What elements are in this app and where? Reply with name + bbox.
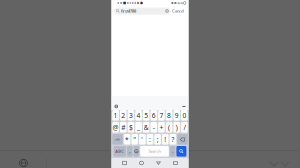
- staticText: ": [133, 135, 136, 144]
- button[interactable]: ': [139, 134, 146, 145]
- staticText: :: [149, 135, 151, 144]
- button[interactable]: ): [173, 122, 180, 133]
- button[interactable]: Cancel: [172, 8, 184, 14]
- button[interactable]: Home: [138, 159, 145, 167]
- staticText: Cancel: [172, 8, 184, 14]
- button[interactable]: *: [124, 134, 130, 145]
- button[interactable]: ?: [170, 134, 176, 145]
- staticText: 7: [159, 111, 163, 120]
- button[interactable]: :: [147, 134, 153, 145]
- staticText: (: [168, 123, 170, 132]
- button[interactable]: -: [150, 122, 157, 133]
- staticText: /: [183, 123, 185, 132]
- staticText: 5: [144, 111, 148, 120]
- button[interactable]: @: [112, 122, 119, 133]
- staticText: first4788: [121, 8, 136, 14]
- button[interactable]: Keyboard: [171, 159, 179, 167]
- staticText: ): [176, 123, 178, 132]
- button[interactable]: 7: [158, 110, 165, 121]
- button[interactable]: =\<: [112, 134, 123, 145]
- button[interactable]: ABC: [114, 146, 126, 157]
- staticText: =\<: [115, 137, 120, 142]
- button[interactable]: Back: [155, 159, 162, 167]
- button[interactable]: 0: [181, 110, 188, 121]
- button[interactable]: 2: [120, 110, 126, 121]
- button[interactable]: Account: [19, 158, 28, 167]
- button[interactable]: Collapse suggestions: [182, 106, 185, 107]
- button[interactable]: !: [162, 134, 169, 145]
- staticText: ,: [129, 148, 130, 155]
- staticText: 3: [129, 111, 133, 120]
- staticText: ?: [171, 135, 174, 144]
- staticText: &: [144, 123, 149, 132]
- button[interactable]: ": [131, 134, 138, 145]
- staticText: #: [121, 123, 125, 132]
- button[interactable]: Search: [176, 146, 186, 157]
- staticText: 8: [167, 111, 171, 120]
- staticText: *: [125, 135, 129, 144]
- staticText: 0: [182, 111, 186, 120]
- staticText: $: [129, 123, 133, 132]
- button[interactable]: .: [170, 146, 175, 157]
- staticText: 2: [121, 111, 125, 120]
- button[interactable]: 9: [173, 110, 180, 121]
- staticText: !: [164, 135, 166, 144]
- button[interactable]: 4: [135, 110, 142, 121]
- button[interactable]: $: [128, 122, 134, 133]
- staticText: ': [141, 135, 143, 144]
- staticText: .: [172, 148, 173, 155]
- staticText: +: [159, 123, 163, 132]
- button[interactable]: &: [143, 122, 149, 133]
- button[interactable]: Recents: [121, 159, 128, 167]
- button[interactable]: _: [135, 122, 142, 133]
- button[interactable]: /: [181, 122, 188, 133]
- button[interactable]: +: [158, 122, 165, 133]
- button[interactable]: 5: [143, 110, 149, 121]
- staticText: 4: [136, 111, 140, 120]
- staticText: ABC: [115, 149, 124, 154]
- staticText: -: [153, 123, 155, 132]
- staticText: 1: [114, 111, 118, 120]
- button[interactable]: 3: [128, 110, 134, 121]
- staticText: _: [137, 123, 140, 132]
- button[interactable]: ,: [127, 146, 133, 157]
- staticText: 6: [152, 111, 156, 120]
- button[interactable]: Backspace: [177, 134, 188, 145]
- button[interactable]: Emoji: [134, 146, 139, 157]
- button[interactable]: Gboard: [114, 105, 118, 108]
- staticText: @: [113, 123, 119, 132]
- button[interactable]: 8: [166, 110, 172, 121]
- button[interactable]: #: [120, 122, 126, 133]
- button[interactable]: 6: [150, 110, 157, 121]
- staticText: 9: [175, 111, 179, 120]
- button[interactable]: (: [166, 122, 172, 133]
- button[interactable]: ;: [154, 134, 161, 145]
- button[interactable]: 1: [112, 110, 119, 121]
- staticText: Search: [148, 149, 160, 154]
- button[interactable]: Search: [140, 146, 169, 157]
- button[interactable]: Expand: [270, 161, 289, 167]
- staticText: ;: [157, 135, 159, 144]
